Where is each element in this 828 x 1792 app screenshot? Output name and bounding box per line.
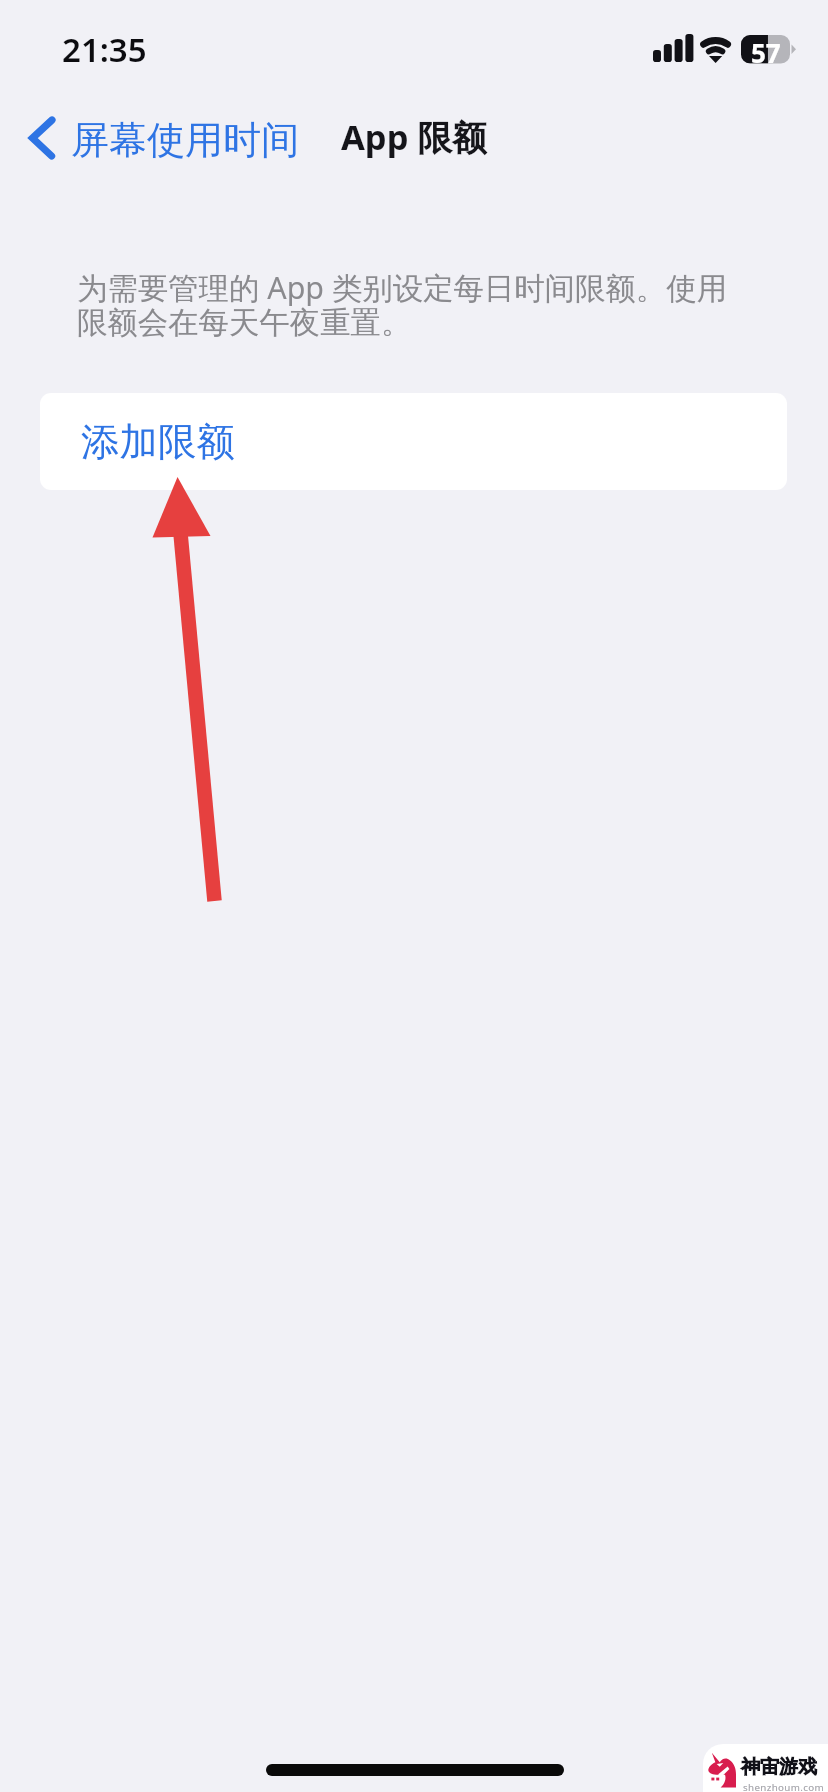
staticText: 添加限额 (81, 418, 235, 467)
staticText: shenzhoum.com (743, 1781, 825, 1792)
staticText: 为需要管理的 App 类别设定每日时间限额。使用 限额会在每天午夜重置。 (77, 267, 728, 342)
staticText: App 限额 (341, 113, 487, 160)
staticText: 屏幕使用时间 (71, 116, 299, 164)
staticText: 21:35 (62, 27, 147, 72)
staticText: 57 (751, 35, 781, 64)
button[interactable]: 返回 屏幕使用时间 (25, 106, 299, 174)
button[interactable]: 添加限额 (40, 393, 787, 490)
staticText: 神宙游戏 (741, 1755, 817, 1779)
